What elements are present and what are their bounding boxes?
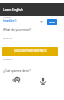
button[interactable]: OPEN: [47, 19, 57, 25]
staticText: OPEN: [49, 21, 55, 24]
staticText: SPANISH: [3, 58, 13, 61]
staticText: Learn English: [3, 8, 23, 12]
staticText: headline1: [3, 19, 17, 23]
button[interactable]: Speak: [37, 75, 48, 86]
staticText: Headline: [3, 16, 11, 18]
staticText: ENGLISH: [3, 37, 13, 40]
button[interactable]: Listen: [11, 75, 22, 86]
button[interactable]: LOAD ANOTHER SENTENCE: [2, 47, 58, 56]
staticText: ¿Qué quieres decir?: [3, 69, 31, 73]
staticText: What do you mean?: [3, 28, 31, 32]
staticText: LOAD ANOTHER SENTENCE: [14, 50, 47, 53]
